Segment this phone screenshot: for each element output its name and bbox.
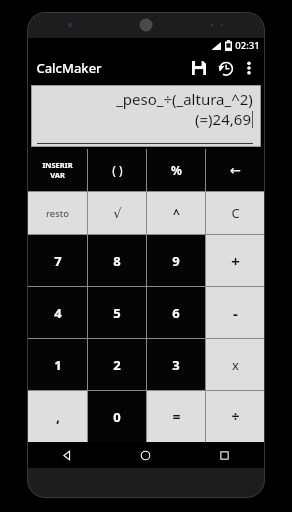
staticText: 7 (54, 252, 62, 270)
button[interactable]: 7 (28, 235, 87, 286)
button[interactable]: 2 (88, 339, 146, 390)
staticText: 3 (172, 356, 180, 374)
staticText: 4 (54, 304, 62, 322)
button[interactable]: ÷ (206, 391, 264, 442)
staticText: + (231, 251, 240, 271)
staticText: CalcMaker (36, 59, 102, 77)
button[interactable]: + (206, 235, 264, 286)
staticText: 1 (54, 356, 62, 374)
staticText: 0 (113, 408, 121, 426)
staticText: ^ (173, 205, 180, 221)
button[interactable]: 4 (28, 287, 87, 338)
button[interactable]: Home (106, 442, 185, 468)
button[interactable]: ← (206, 149, 264, 191)
button[interactable]: 0 (88, 391, 146, 442)
staticText: 2 (113, 356, 121, 374)
staticText: ← (230, 163, 241, 178)
staticText: √ (113, 206, 122, 221)
button[interactable]: Recents (185, 442, 264, 468)
button[interactable]: C (206, 192, 264, 234)
button[interactable]: INSERIR (28, 149, 87, 191)
button[interactable]: 5 (88, 287, 146, 338)
staticText: x (232, 356, 239, 374)
button[interactable]: 9 (147, 235, 205, 286)
staticText: 8 (113, 252, 121, 270)
button[interactable]: resto (28, 192, 87, 234)
staticText: % (171, 162, 182, 178)
button[interactable]: History (212, 55, 238, 81)
staticText: 6 (172, 304, 180, 322)
button[interactable]: - (206, 287, 264, 338)
button[interactable]: 6 (147, 287, 205, 338)
staticText: C (231, 204, 240, 222)
button[interactable]: Back (28, 442, 106, 468)
staticText: INSERIR (42, 160, 73, 170)
button[interactable]: , (28, 391, 87, 442)
staticText: (=)24,69 (195, 109, 251, 129)
staticText: 5 (113, 304, 121, 322)
staticText: = (172, 407, 181, 426)
staticText: _peso_÷(_altura_^2) (116, 89, 253, 109)
staticText: ( ) (112, 162, 123, 178)
button[interactable]: 3 (147, 339, 205, 390)
button[interactable]: ^ (147, 192, 205, 234)
button[interactable]: Save (186, 55, 212, 81)
button[interactable]: = (147, 391, 205, 442)
staticText: , (56, 407, 60, 426)
button[interactable]: More options (238, 57, 260, 79)
button[interactable]: % (147, 149, 205, 191)
staticText: ÷ (231, 407, 240, 426)
staticText: resto (46, 207, 69, 220)
button[interactable]: x (206, 339, 264, 390)
button[interactable]: 8 (88, 235, 146, 286)
button[interactable]: √ (88, 192, 146, 234)
button[interactable]: 1 (28, 339, 87, 390)
staticText: 9 (172, 252, 180, 270)
button[interactable]: ( ) (88, 149, 146, 191)
staticText: VAR (50, 170, 65, 180)
staticText: - (233, 303, 238, 323)
staticText: 02:31 (235, 39, 260, 52)
